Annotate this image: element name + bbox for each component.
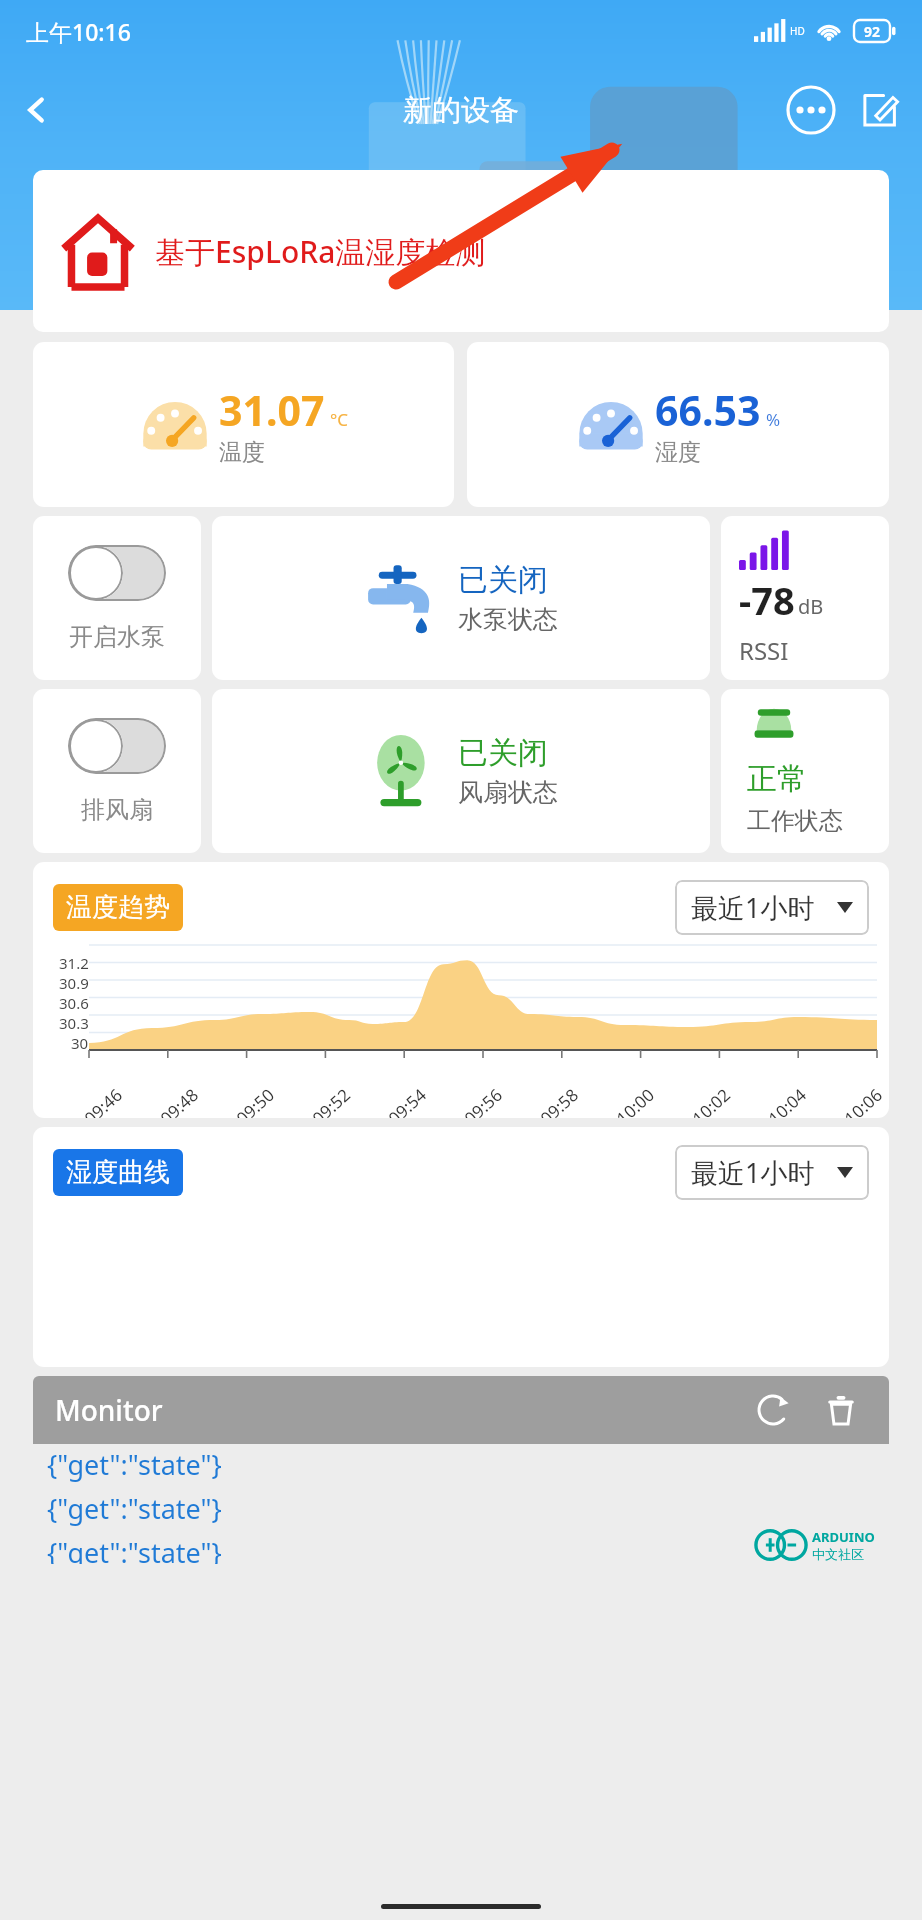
button[interactable]: 正常 xyxy=(721,689,889,853)
button[interactable]: 排风扇 xyxy=(68,718,166,774)
button[interactable]: 温度趋势 xyxy=(53,884,183,931)
button[interactable]: 开启水泵 xyxy=(33,516,201,680)
staticText: 新的设备 xyxy=(403,92,519,129)
staticText: dB xyxy=(798,593,824,620)
button[interactable]: 基于EspLoRa温湿度检测 xyxy=(33,170,889,332)
staticText: °C xyxy=(330,408,349,431)
staticText: 上午10:16 xyxy=(26,16,131,47)
staticText: 09:46 xyxy=(79,1083,127,1118)
staticText: % xyxy=(766,408,781,431)
staticText: 10:06 xyxy=(839,1083,887,1118)
button[interactable]: 最近1小时 xyxy=(675,1145,869,1200)
staticText: 09:58 xyxy=(535,1083,583,1118)
staticText: 09:50 xyxy=(231,1083,279,1118)
staticText: 31.2 xyxy=(59,953,89,973)
staticText: 30.9 xyxy=(59,973,89,993)
staticText: ARDUINO xyxy=(812,1528,875,1546)
staticText: {"get":"state"} xyxy=(47,1446,222,1483)
button[interactable]: 湿度曲线 xyxy=(53,1149,183,1196)
staticText: 最近1小时 xyxy=(691,1154,815,1191)
staticText: -78 xyxy=(739,574,795,626)
staticText: 09:52 xyxy=(307,1083,355,1118)
staticText: 31.07 xyxy=(219,382,325,438)
button[interactable]: 已关闭 xyxy=(212,516,710,680)
staticText: 基于EspLoRa温湿度检测 xyxy=(155,231,486,272)
staticText: 30 xyxy=(71,1033,89,1053)
button[interactable]: More options xyxy=(782,81,840,139)
button[interactable]: 31.07 xyxy=(33,342,454,507)
button[interactable]: -78 xyxy=(721,516,889,680)
staticText: {"get":"state"} xyxy=(47,1490,222,1527)
staticText: 湿度曲线 xyxy=(66,1156,170,1189)
staticText: RSSI xyxy=(739,634,789,667)
staticText: 水泵状态 xyxy=(458,604,558,635)
staticText: 中文社区 xyxy=(812,1546,864,1562)
staticText: 温度 xyxy=(219,438,265,467)
staticText: 09:56 xyxy=(459,1083,507,1118)
staticText: Monitor xyxy=(55,1391,163,1429)
staticText: 66.53 xyxy=(655,382,761,438)
button[interactable]: 最近1小时 xyxy=(675,880,869,935)
button[interactable]: 已关闭 xyxy=(212,689,710,853)
staticText: 10:04 xyxy=(763,1083,811,1118)
staticText: 排风扇 xyxy=(81,795,153,825)
staticText: 10:02 xyxy=(687,1083,735,1118)
staticText: 10:00 xyxy=(611,1083,659,1118)
staticText: 开启水泵 xyxy=(69,622,165,652)
staticText: 风扇状态 xyxy=(458,777,558,808)
button[interactable]: 排风扇 xyxy=(33,689,201,853)
staticText: 湿度 xyxy=(655,438,701,467)
staticText: 30.6 xyxy=(59,993,89,1013)
button[interactable]: Edit xyxy=(854,84,906,136)
staticText: 工作状态 xyxy=(747,806,843,836)
staticText: 已关闭 xyxy=(458,734,548,772)
button[interactable]: Refresh xyxy=(747,1384,799,1436)
button[interactable]: Delete xyxy=(815,1384,867,1436)
staticText: 09:48 xyxy=(155,1083,203,1118)
staticText: 已关闭 xyxy=(458,561,548,599)
staticText: 30.3 xyxy=(59,1013,89,1033)
staticText: 正常 xyxy=(747,760,807,798)
staticText: 温度趋势 xyxy=(66,891,170,924)
staticText: 09:54 xyxy=(383,1083,431,1118)
staticText: 92 xyxy=(864,22,881,41)
button[interactable]: Back xyxy=(10,83,64,137)
staticText: 最近1小时 xyxy=(691,889,815,926)
button[interactable]: 66.53 xyxy=(467,342,889,507)
staticText: HD xyxy=(790,24,805,38)
staticText: {"get":"state"} xyxy=(47,1534,222,1564)
button[interactable]: 开启水泵 xyxy=(68,545,166,601)
